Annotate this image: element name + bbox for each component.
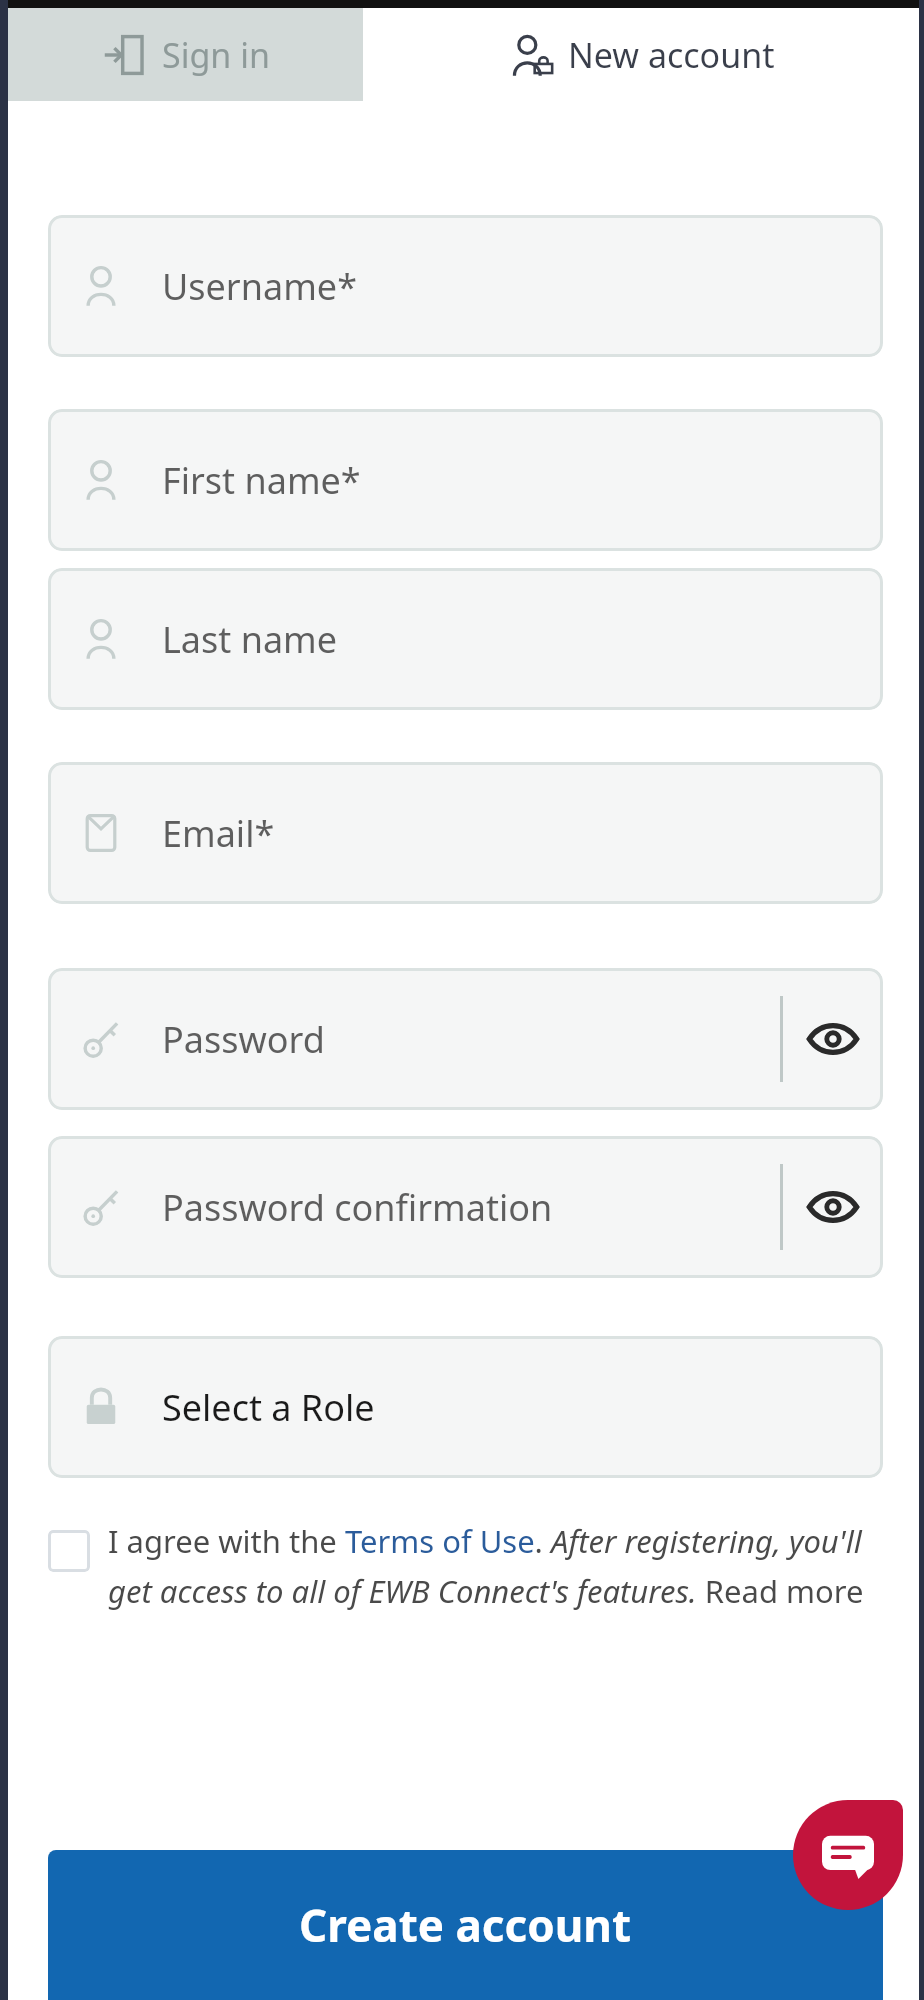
staticText: Select a Role [162,1383,375,1432]
button[interactable]: New account [363,8,919,101]
staticText: Sign in [162,32,270,78]
button[interactable]: Show password [783,968,883,1110]
staticText: Create account [299,1895,632,1955]
button[interactable]: First name* [48,409,883,551]
staticText: First name* [162,456,361,505]
button[interactable]: Select a Role [48,1336,883,1478]
staticText: Last name [162,615,338,664]
staticText: Password [162,1015,325,1064]
button[interactable]: Chat support [793,1800,903,1910]
other: Agree to terms [48,1530,90,1572]
staticText: Email* [162,809,275,858]
staticText: New account [568,32,775,78]
staticText: Username* [162,262,357,311]
button[interactable]: Password confirmation [48,1136,883,1278]
button[interactable]: Sign in [8,8,363,101]
button[interactable]: Email* [48,762,883,904]
button[interactable]: Show password [783,1136,883,1278]
button[interactable]: Password [48,968,883,1110]
button[interactable]: Username* [48,215,883,357]
button[interactable]: Create account [48,1850,883,2000]
button[interactable]: Agree to terms [48,1520,883,1612]
button[interactable]: Last name [48,568,883,710]
staticText: Password confirmation [162,1183,553,1232]
staticText: I agree with the Terms of Use. After reg… [108,1520,883,1612]
